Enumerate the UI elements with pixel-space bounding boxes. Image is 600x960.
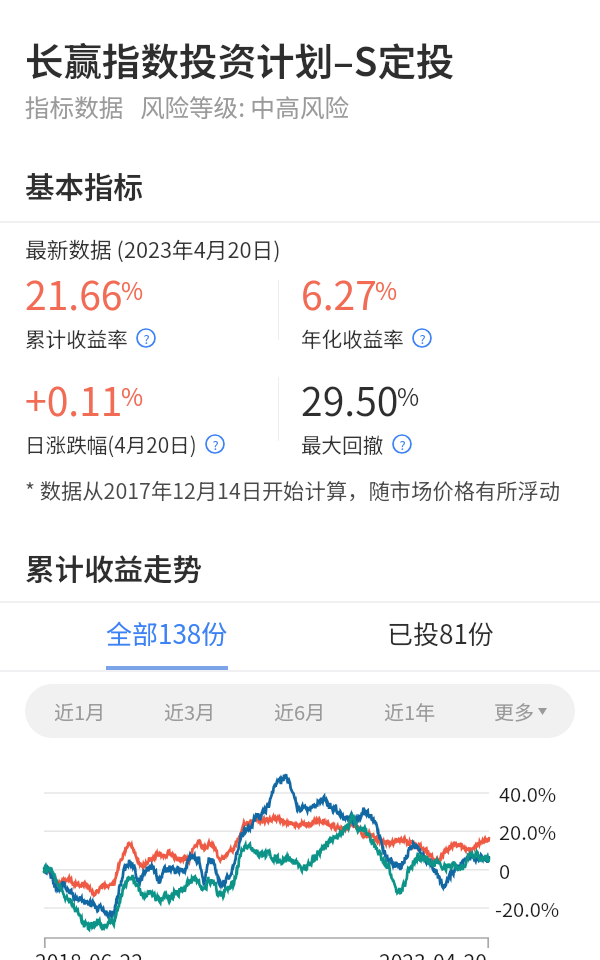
button[interactable]: 全部138份 bbox=[0, 599, 334, 666]
staticText: 全部138份 bbox=[106, 614, 228, 652]
staticText: ? bbox=[399, 435, 406, 454]
staticText: 21.66 bbox=[25, 265, 123, 321]
staticText: ? bbox=[212, 435, 219, 454]
button[interactable]: 更多 bbox=[465, 684, 575, 738]
button[interactable]: 近1年 bbox=[355, 684, 465, 738]
staticText: 最新数据 (2023年4月20日) bbox=[25, 233, 281, 264]
button[interactable]: 近6月 bbox=[245, 684, 355, 738]
button[interactable]: 近3月 bbox=[135, 684, 245, 738]
button[interactable]: Help bbox=[136, 328, 156, 348]
staticText: * 数据从2017年12月14日开始计算，随市场价格有所浮动 bbox=[25, 474, 561, 505]
button[interactable]: Help bbox=[412, 328, 432, 348]
button[interactable]: Help bbox=[392, 434, 412, 454]
staticText: 累计收益走势 bbox=[25, 546, 203, 589]
staticText: % bbox=[375, 272, 398, 307]
staticText: % bbox=[121, 378, 144, 413]
staticText: 近1月 bbox=[54, 697, 106, 726]
staticText: 年化收益率 bbox=[301, 323, 404, 353]
staticText: 长赢指数投资计划–S定投 bbox=[25, 31, 455, 87]
staticText: +0.11 bbox=[25, 371, 123, 427]
staticText: 更多 bbox=[494, 697, 534, 726]
staticText: 6.27 bbox=[301, 265, 377, 321]
staticText: 40.0% bbox=[499, 779, 557, 808]
staticText: 29.50 bbox=[301, 371, 399, 427]
staticText: ? bbox=[419, 329, 426, 348]
button[interactable]: Help bbox=[205, 434, 225, 454]
staticText: 已投81份 bbox=[387, 614, 494, 652]
staticText: 近3月 bbox=[164, 697, 216, 726]
staticText: 20.0% bbox=[499, 817, 557, 846]
staticText: 近6月 bbox=[274, 697, 326, 726]
staticText: 0 bbox=[499, 856, 511, 885]
staticText: 近1年 bbox=[384, 697, 436, 726]
staticText: 指标数据 风险等级: 中高风险 bbox=[25, 88, 349, 124]
button[interactable]: 近1月 bbox=[25, 684, 135, 738]
staticText: 2023-04-20 bbox=[379, 946, 487, 960]
staticText: % bbox=[121, 272, 144, 307]
staticText: ? bbox=[143, 329, 150, 348]
staticText: -20.0% bbox=[495, 894, 560, 923]
staticText: 最大回撤 bbox=[301, 429, 384, 459]
staticText: 基本指标 bbox=[25, 164, 144, 207]
staticText: 2018-06-22 bbox=[35, 946, 143, 960]
staticText: 累计收益率 bbox=[25, 323, 128, 353]
button[interactable]: 已投81份 bbox=[334, 599, 547, 666]
staticText: % bbox=[397, 378, 420, 413]
staticText: 日涨跌幅(4月20日) bbox=[25, 429, 197, 459]
